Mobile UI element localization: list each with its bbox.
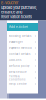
button[interactable]: Refund policy [7, 63, 38, 69]
button[interactable]: Reschedule [7, 69, 38, 75]
staticText: Payment method [9, 46, 32, 50]
staticText: Reschedule [9, 70, 27, 74]
staticText: Refund policy [9, 64, 29, 68]
button[interactable]: Payment method [7, 45, 38, 51]
staticText: Help centre [9, 82, 27, 86]
button[interactable]: Booking details [7, 33, 38, 39]
staticText: Terms & conditions [9, 75, 25, 81]
staticText: upload your purchase, [1, 5, 37, 10]
staticText: E-voucher [1, 0, 18, 5]
button[interactable]: Help centre [7, 81, 38, 87]
staticText: Add-ons [9, 58, 21, 62]
button[interactable]: Contact details [7, 51, 38, 57]
staticText: Passenger [9, 40, 23, 44]
staticText: reservation tickets [1, 14, 32, 19]
staticText: Add e-ticket [9, 25, 28, 29]
button[interactable]: Add-ons [7, 57, 38, 63]
button[interactable]: Terms & conditions [7, 75, 38, 81]
staticText: Contact details [9, 52, 30, 56]
staticText: entrance and [1, 10, 22, 15]
button[interactable]: Passenger [7, 39, 38, 45]
staticText: Booking details [9, 34, 31, 38]
